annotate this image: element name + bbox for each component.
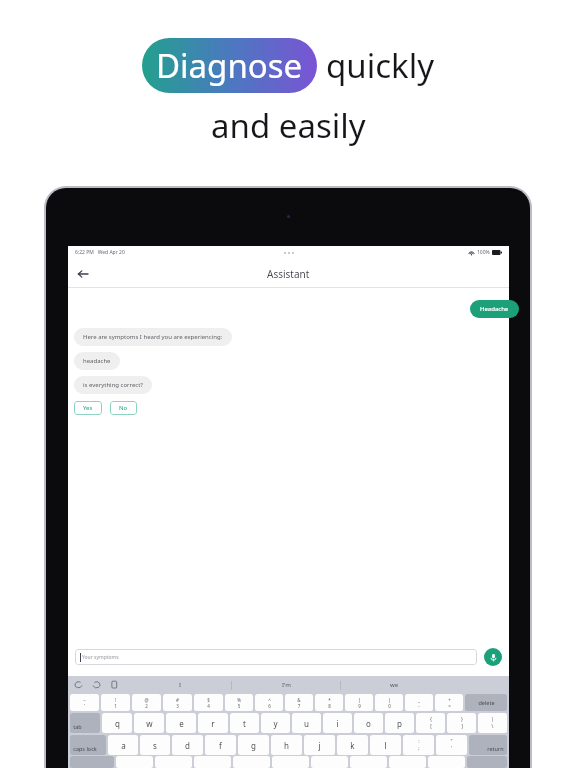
staticText: ) 0 (388, 697, 391, 709)
staticText: i (336, 718, 339, 729)
button[interactable]: Redo (91, 679, 102, 690)
button[interactable]: ( 9 (345, 694, 373, 711)
staticText: I (179, 681, 182, 689)
button[interactable]: u (292, 713, 321, 733)
staticText: return (487, 745, 504, 752)
button[interactable]: Your symptoms (75, 649, 477, 665)
button[interactable]: # 3 (163, 694, 192, 711)
button[interactable]: " ' (436, 735, 467, 755)
button[interactable]: I (169, 679, 192, 691)
button[interactable]: w (134, 713, 164, 733)
button[interactable]: t (230, 713, 259, 733)
button[interactable]: & 7 (285, 694, 313, 711)
button[interactable]: Headache (470, 300, 519, 318)
button[interactable]: caps lock (70, 735, 106, 755)
button[interactable]: e (166, 713, 196, 733)
button[interactable]: j (304, 735, 335, 755)
button[interactable]: s (140, 735, 170, 755)
button[interactable]: q (102, 713, 132, 733)
button[interactable] (311, 756, 348, 768)
button[interactable]: : ; (403, 735, 434, 755)
button[interactable]: o (354, 713, 383, 733)
button[interactable] (272, 756, 309, 768)
button[interactable]: Voice input (484, 648, 502, 666)
staticText: % 5 (237, 697, 241, 709)
button[interactable]: k (337, 735, 368, 755)
staticText: Assistant (267, 267, 310, 281)
button[interactable]: we (380, 679, 409, 691)
button[interactable]: @ 2 (132, 694, 161, 711)
staticText: + = (448, 697, 451, 709)
button[interactable]: ) 0 (375, 694, 403, 711)
staticText: delete (478, 699, 495, 706)
button[interactable]: i (323, 713, 352, 733)
button[interactable]: y (261, 713, 290, 733)
button[interactable]: is everything correct? (74, 376, 152, 394)
staticText: Diagnose (156, 43, 303, 88)
button[interactable] (428, 756, 465, 768)
staticText: d (185, 740, 190, 751)
button[interactable]: l (370, 735, 401, 755)
button[interactable] (350, 756, 387, 768)
button[interactable] (116, 756, 153, 768)
staticText: h (284, 740, 289, 751)
staticText: caps lock (73, 745, 97, 752)
staticText: f (219, 740, 222, 751)
button[interactable]: Yes (74, 401, 102, 415)
button[interactable] (233, 756, 270, 768)
button[interactable]: Undo (73, 679, 84, 690)
button[interactable]: f (205, 735, 236, 755)
button[interactable]: _ - (405, 694, 433, 711)
staticText: o (366, 718, 371, 729)
button[interactable]: a (108, 735, 138, 755)
button[interactable]: } ] (447, 713, 476, 733)
staticText: r (211, 718, 215, 729)
button[interactable]: No (110, 401, 137, 415)
button[interactable] (194, 756, 231, 768)
staticText: & 7 (297, 697, 301, 709)
button[interactable]: % 5 (225, 694, 253, 711)
button[interactable]: { [ (416, 713, 445, 733)
button[interactable]: return (469, 735, 507, 755)
staticText: is everything correct? (83, 381, 143, 389)
button[interactable]: Paste (109, 679, 120, 690)
button[interactable]: delete (465, 694, 507, 711)
staticText: @ 2 (144, 697, 149, 709)
button[interactable]: g (238, 735, 269, 755)
staticText: t (243, 718, 246, 729)
staticText: and easily (211, 103, 366, 148)
button[interactable]: r (198, 713, 228, 733)
button[interactable] (155, 756, 192, 768)
button[interactable]: ! 1 (101, 694, 130, 711)
staticText: a (121, 740, 126, 751)
staticText: $ 4 (207, 697, 210, 709)
button[interactable]: | \ (478, 713, 507, 733)
staticText: Yes (83, 404, 93, 412)
button[interactable]: * 8 (315, 694, 343, 711)
button[interactable]: $ 4 (194, 694, 223, 711)
staticText: No (119, 404, 128, 412)
button[interactable]: p (385, 713, 414, 733)
button[interactable]: h (271, 735, 302, 755)
staticText: j (318, 740, 321, 751)
staticText: # 3 (176, 697, 179, 709)
button[interactable]: tab (70, 713, 100, 733)
staticText: l (384, 740, 387, 751)
button[interactable]: ^ 6 (255, 694, 283, 711)
staticText: { [ (430, 716, 432, 730)
button[interactable]: I'm (272, 679, 301, 691)
button[interactable]: Back (72, 263, 94, 285)
staticText: Headache (480, 305, 509, 313)
button[interactable]: + = (435, 694, 463, 711)
button[interactable]: d (172, 735, 203, 755)
staticText: _ - (418, 697, 420, 709)
button[interactable]: ~ ` (70, 694, 99, 711)
button[interactable]: headache (74, 352, 120, 370)
staticText: } ] (461, 716, 463, 730)
staticText: | \ (491, 716, 494, 730)
button[interactable]: Here are symptoms I heard you are experi… (74, 328, 232, 346)
button[interactable] (389, 756, 426, 768)
staticText: 100% (477, 249, 490, 256)
